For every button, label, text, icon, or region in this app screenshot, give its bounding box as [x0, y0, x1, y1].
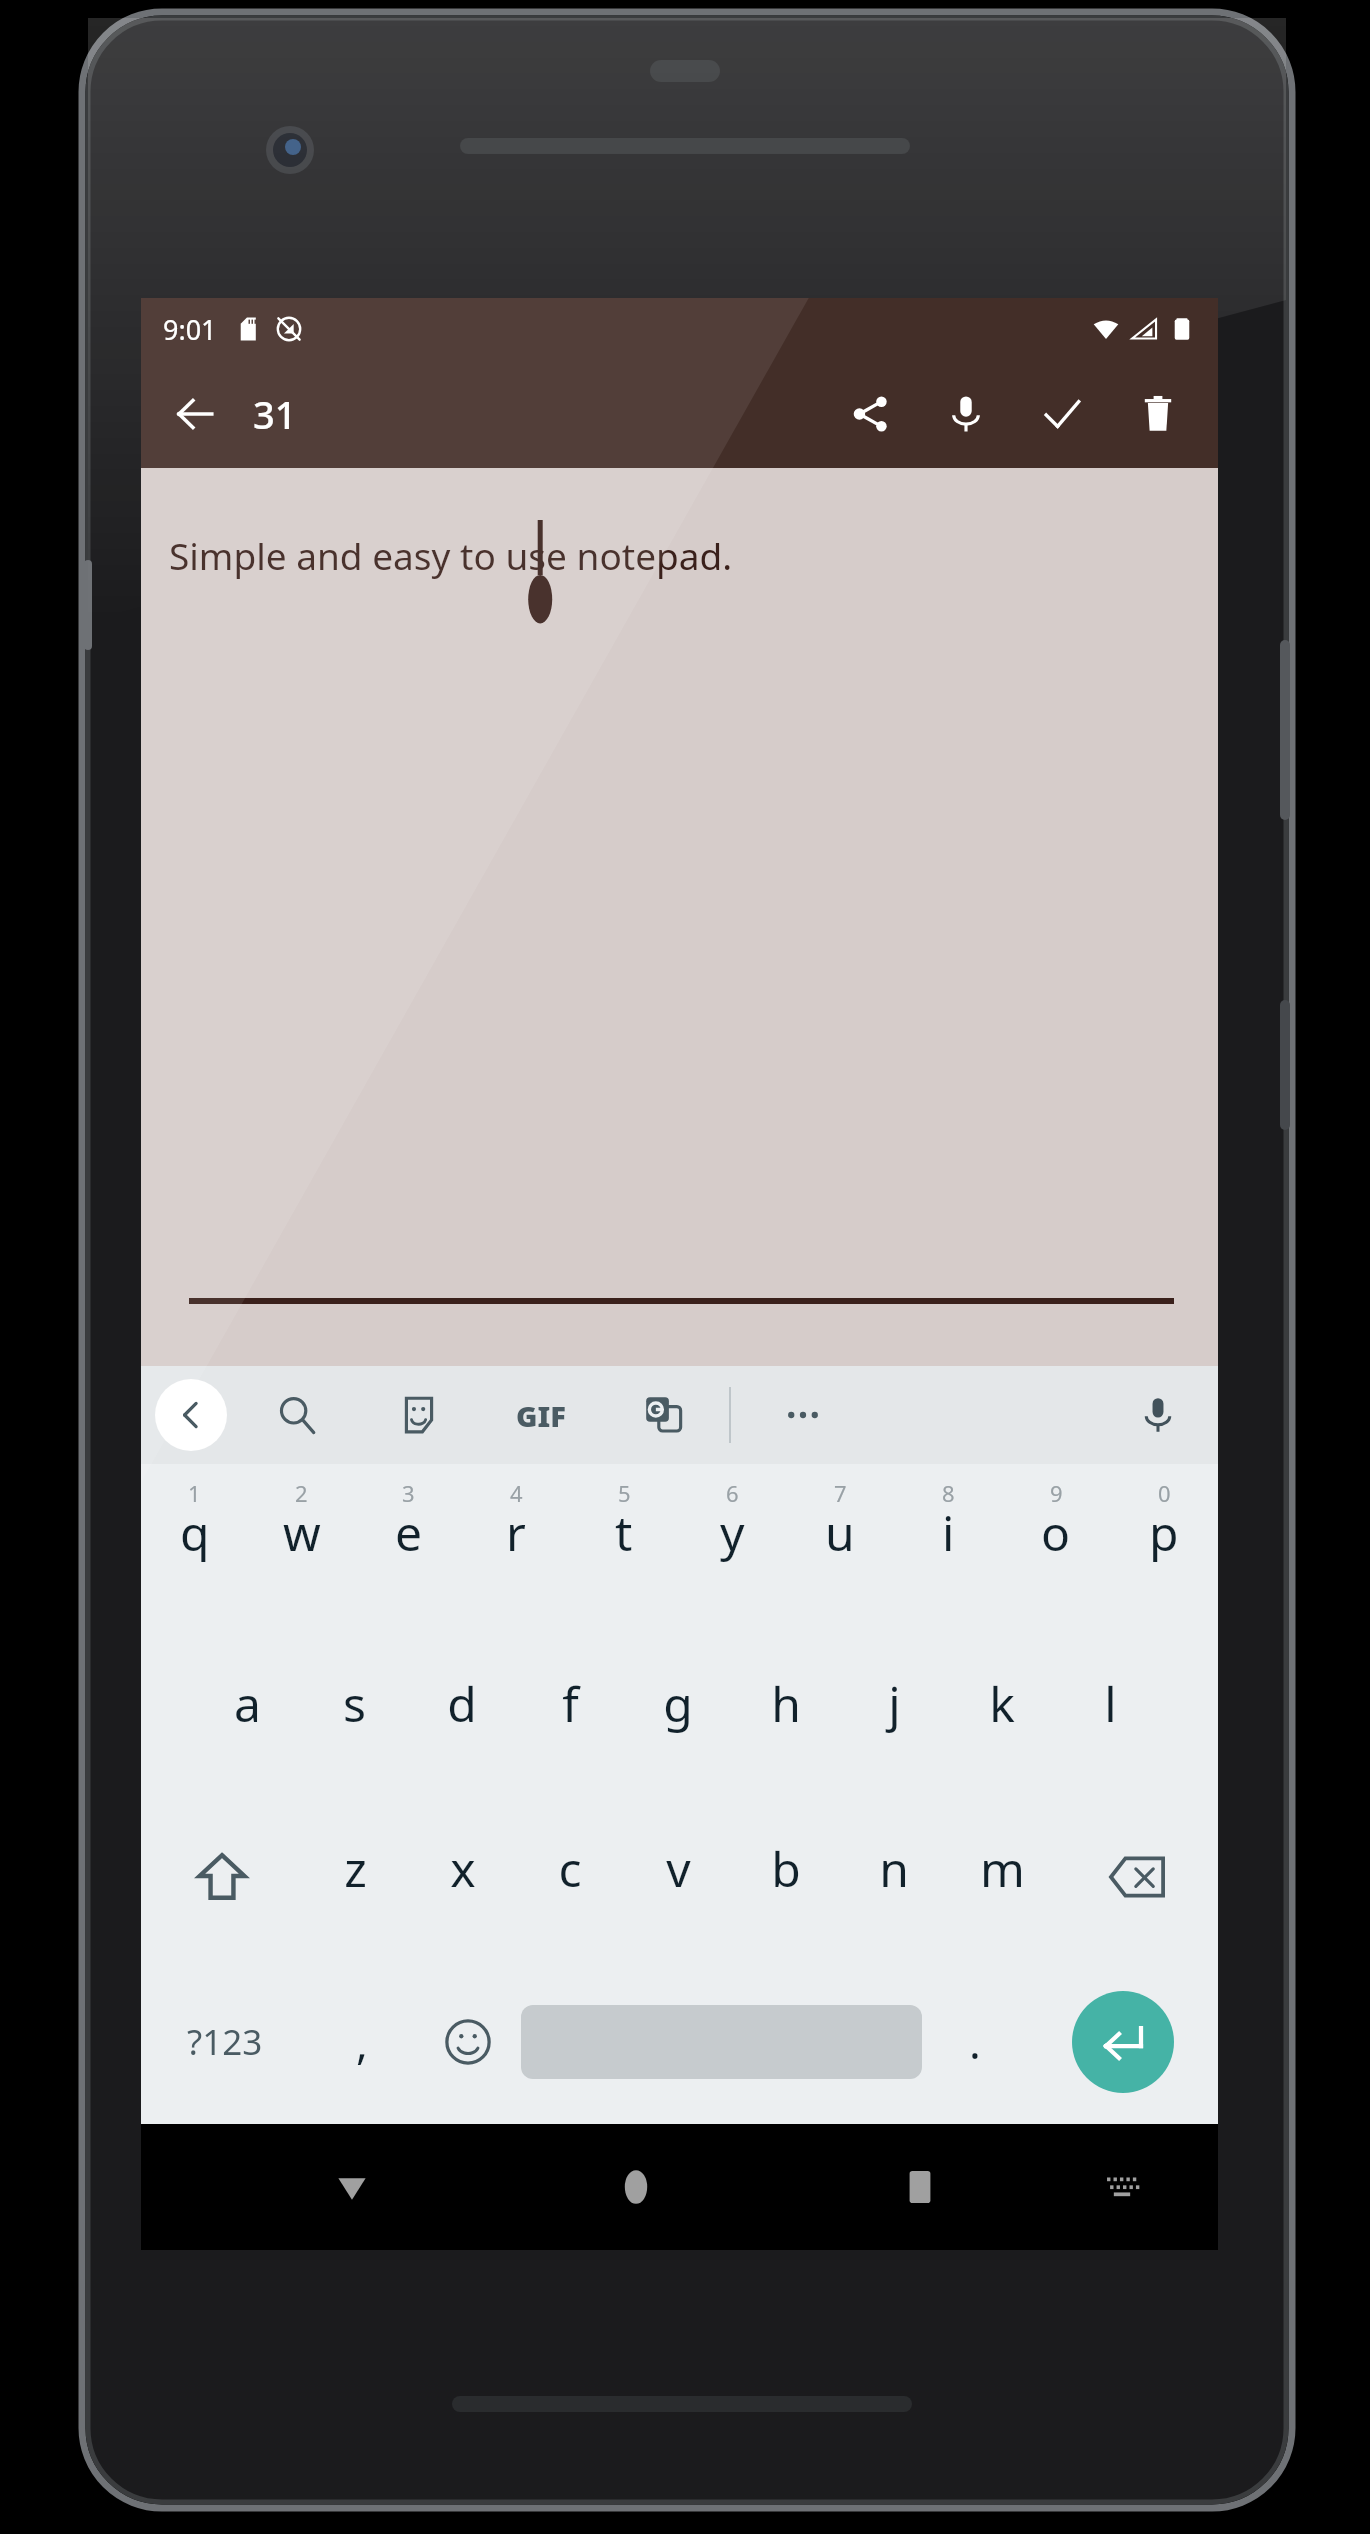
button[interactable]: ,: [309, 1959, 415, 2124]
staticText: 7: [834, 1478, 847, 1508]
button[interactable]: l: [1056, 1629, 1164, 1794]
button[interactable]: Switch keyboard: [1086, 2151, 1158, 2223]
staticText: 2: [295, 1478, 308, 1508]
staticText: j: [888, 1671, 901, 1736]
button[interactable]: 1: [141, 1464, 248, 1629]
staticText: g: [663, 1671, 693, 1736]
staticText: GIF: [516, 1396, 566, 1435]
staticText: n: [879, 1836, 909, 1901]
button[interactable]: 8: [894, 1464, 1002, 1629]
staticText: Simple and easy to use notepad.: [169, 530, 733, 580]
staticText: 1: [188, 1478, 201, 1508]
button[interactable]: More options: [771, 1383, 835, 1447]
staticText: 6: [726, 1478, 739, 1508]
staticText: y: [720, 1500, 745, 1565]
button[interactable]: a: [194, 1629, 301, 1794]
button[interactable]: Emoji: [415, 1959, 521, 2124]
staticText: o: [1041, 1500, 1071, 1565]
button[interactable]: Delete: [1116, 372, 1200, 456]
staticText: z: [344, 1836, 367, 1901]
button[interactable]: k: [948, 1629, 1056, 1794]
button[interactable]: d: [408, 1629, 516, 1794]
staticText: m: [980, 1836, 1025, 1901]
staticText: 9: [1050, 1478, 1063, 1508]
button[interactable]: Share: [828, 372, 912, 456]
button[interactable]: Recent apps: [878, 2145, 962, 2229]
button[interactable]: GIF: [509, 1383, 573, 1447]
staticText: h: [771, 1671, 801, 1736]
button[interactable]: z: [302, 1794, 409, 1959]
button[interactable]: 4: [462, 1464, 570, 1629]
staticText: 0: [1158, 1478, 1171, 1508]
staticText: e: [395, 1500, 423, 1565]
staticText: 8: [942, 1478, 955, 1508]
staticText: b: [771, 1836, 801, 1901]
button[interactable]: Backspace: [1056, 1794, 1218, 1959]
staticText: t: [615, 1500, 633, 1565]
button[interactable]: Back: [310, 2145, 394, 2229]
staticText: f: [562, 1671, 579, 1736]
button[interactable]: 6: [678, 1464, 786, 1629]
button[interactable]: Stickers: [387, 1383, 451, 1447]
staticText: 4: [510, 1478, 523, 1508]
button[interactable]: 9: [1002, 1464, 1110, 1629]
staticText: d: [447, 1671, 477, 1736]
button[interactable]: v: [624, 1794, 732, 1959]
staticText: p: [1149, 1500, 1179, 1565]
button[interactable]: b: [732, 1794, 840, 1959]
button[interactable]: 0: [1110, 1464, 1218, 1629]
button[interactable]: Simple and easy to use notepad.: [141, 468, 1218, 1366]
button[interactable]: j: [840, 1629, 948, 1794]
staticText: ?123: [187, 2018, 263, 2066]
button[interactable]: Search: [265, 1383, 329, 1447]
button[interactable]: Space: [521, 1959, 922, 2124]
button[interactable]: 5: [570, 1464, 678, 1629]
button[interactable]: Home: [594, 2145, 678, 2229]
staticText: a: [234, 1671, 261, 1736]
staticText: u: [825, 1500, 855, 1565]
button[interactable]: h: [732, 1629, 840, 1794]
staticText: 9:01: [163, 311, 217, 348]
staticText: ,: [356, 2012, 368, 2072]
staticText: k: [989, 1671, 1015, 1736]
button[interactable]: 7: [786, 1464, 894, 1629]
staticText: v: [666, 1836, 691, 1901]
staticText: i: [942, 1500, 955, 1565]
staticText: c: [558, 1836, 582, 1901]
button[interactable]: Translate: [631, 1383, 695, 1447]
button[interactable]: c: [516, 1794, 624, 1959]
staticText: .: [969, 2012, 981, 2072]
button[interactable]: m: [948, 1794, 1056, 1959]
button[interactable]: x: [409, 1794, 516, 1959]
button[interactable]: Back: [153, 372, 237, 456]
button[interactable]: Enter: [1072, 1991, 1174, 2093]
button[interactable]: f: [516, 1629, 624, 1794]
button[interactable]: s: [301, 1629, 408, 1794]
button[interactable]: Save: [1020, 372, 1104, 456]
staticText: l: [1104, 1671, 1117, 1736]
button[interactable]: 3: [355, 1464, 462, 1629]
button[interactable]: n: [840, 1794, 948, 1959]
staticText: r: [506, 1500, 526, 1565]
button[interactable]: Voice typing: [1126, 1383, 1190, 1447]
button[interactable]: Voice input: [924, 372, 1008, 456]
button[interactable]: 2: [248, 1464, 355, 1629]
staticText: x: [450, 1836, 476, 1901]
staticText: s: [343, 1671, 366, 1736]
staticText: 31: [253, 388, 297, 440]
button[interactable]: g: [624, 1629, 732, 1794]
button[interactable]: Shift: [141, 1794, 302, 1959]
button[interactable]: ?123: [141, 1959, 309, 2124]
staticText: 5: [618, 1478, 631, 1508]
button[interactable]: .: [922, 1959, 1028, 2124]
staticText: w: [283, 1500, 321, 1565]
staticText: q: [180, 1500, 210, 1565]
staticText: 3: [402, 1478, 415, 1508]
button[interactable]: Collapse toolbar: [155, 1379, 227, 1451]
